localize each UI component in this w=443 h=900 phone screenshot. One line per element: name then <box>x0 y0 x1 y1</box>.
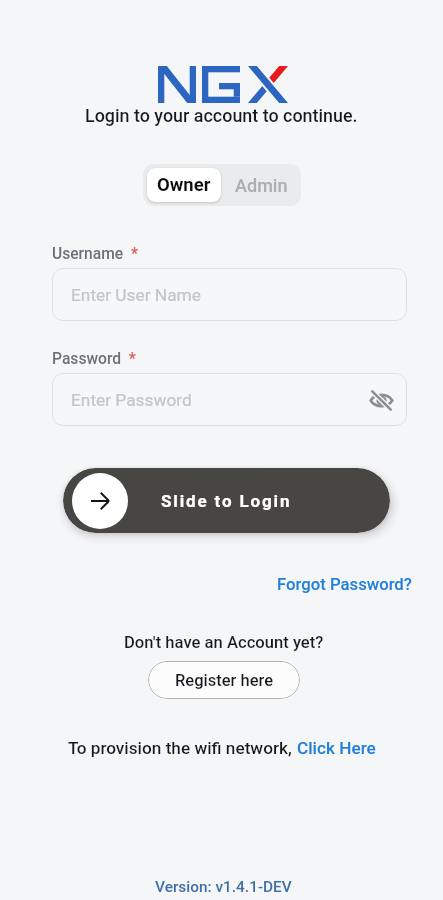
staticText: Enter Password <box>71 390 192 410</box>
button[interactable]: Click Here <box>297 738 376 758</box>
staticText: Register here <box>175 671 274 690</box>
staticText: Admin <box>235 175 288 196</box>
button[interactable]: Enter Password <box>52 373 407 426</box>
staticText: Username * <box>52 244 138 263</box>
button[interactable]: Admin <box>221 168 301 202</box>
staticText: Forgot Password? <box>277 575 412 595</box>
staticText: Login to your account to continue. <box>85 105 358 126</box>
button[interactable]: Register here <box>148 661 300 699</box>
button[interactable]: Slide to Login <box>63 468 390 533</box>
staticText: To provision the wifi network, <box>68 738 297 758</box>
staticText: Version: v1.4.1-DEV <box>155 878 292 896</box>
staticText: Don't have an Account yet? <box>124 633 324 652</box>
staticText: Slide to Login <box>161 491 292 511</box>
staticText: Password * <box>52 349 136 368</box>
button[interactable]: Owner <box>147 168 221 202</box>
button[interactable]: Forgot Password? <box>275 573 414 597</box>
staticText: Owner <box>157 174 211 196</box>
staticText: Enter User Name <box>71 285 201 305</box>
staticText: Click Here <box>297 738 376 758</box>
button[interactable]: Enter User Name <box>52 268 407 321</box>
button[interactable]: Show password <box>365 384 397 416</box>
